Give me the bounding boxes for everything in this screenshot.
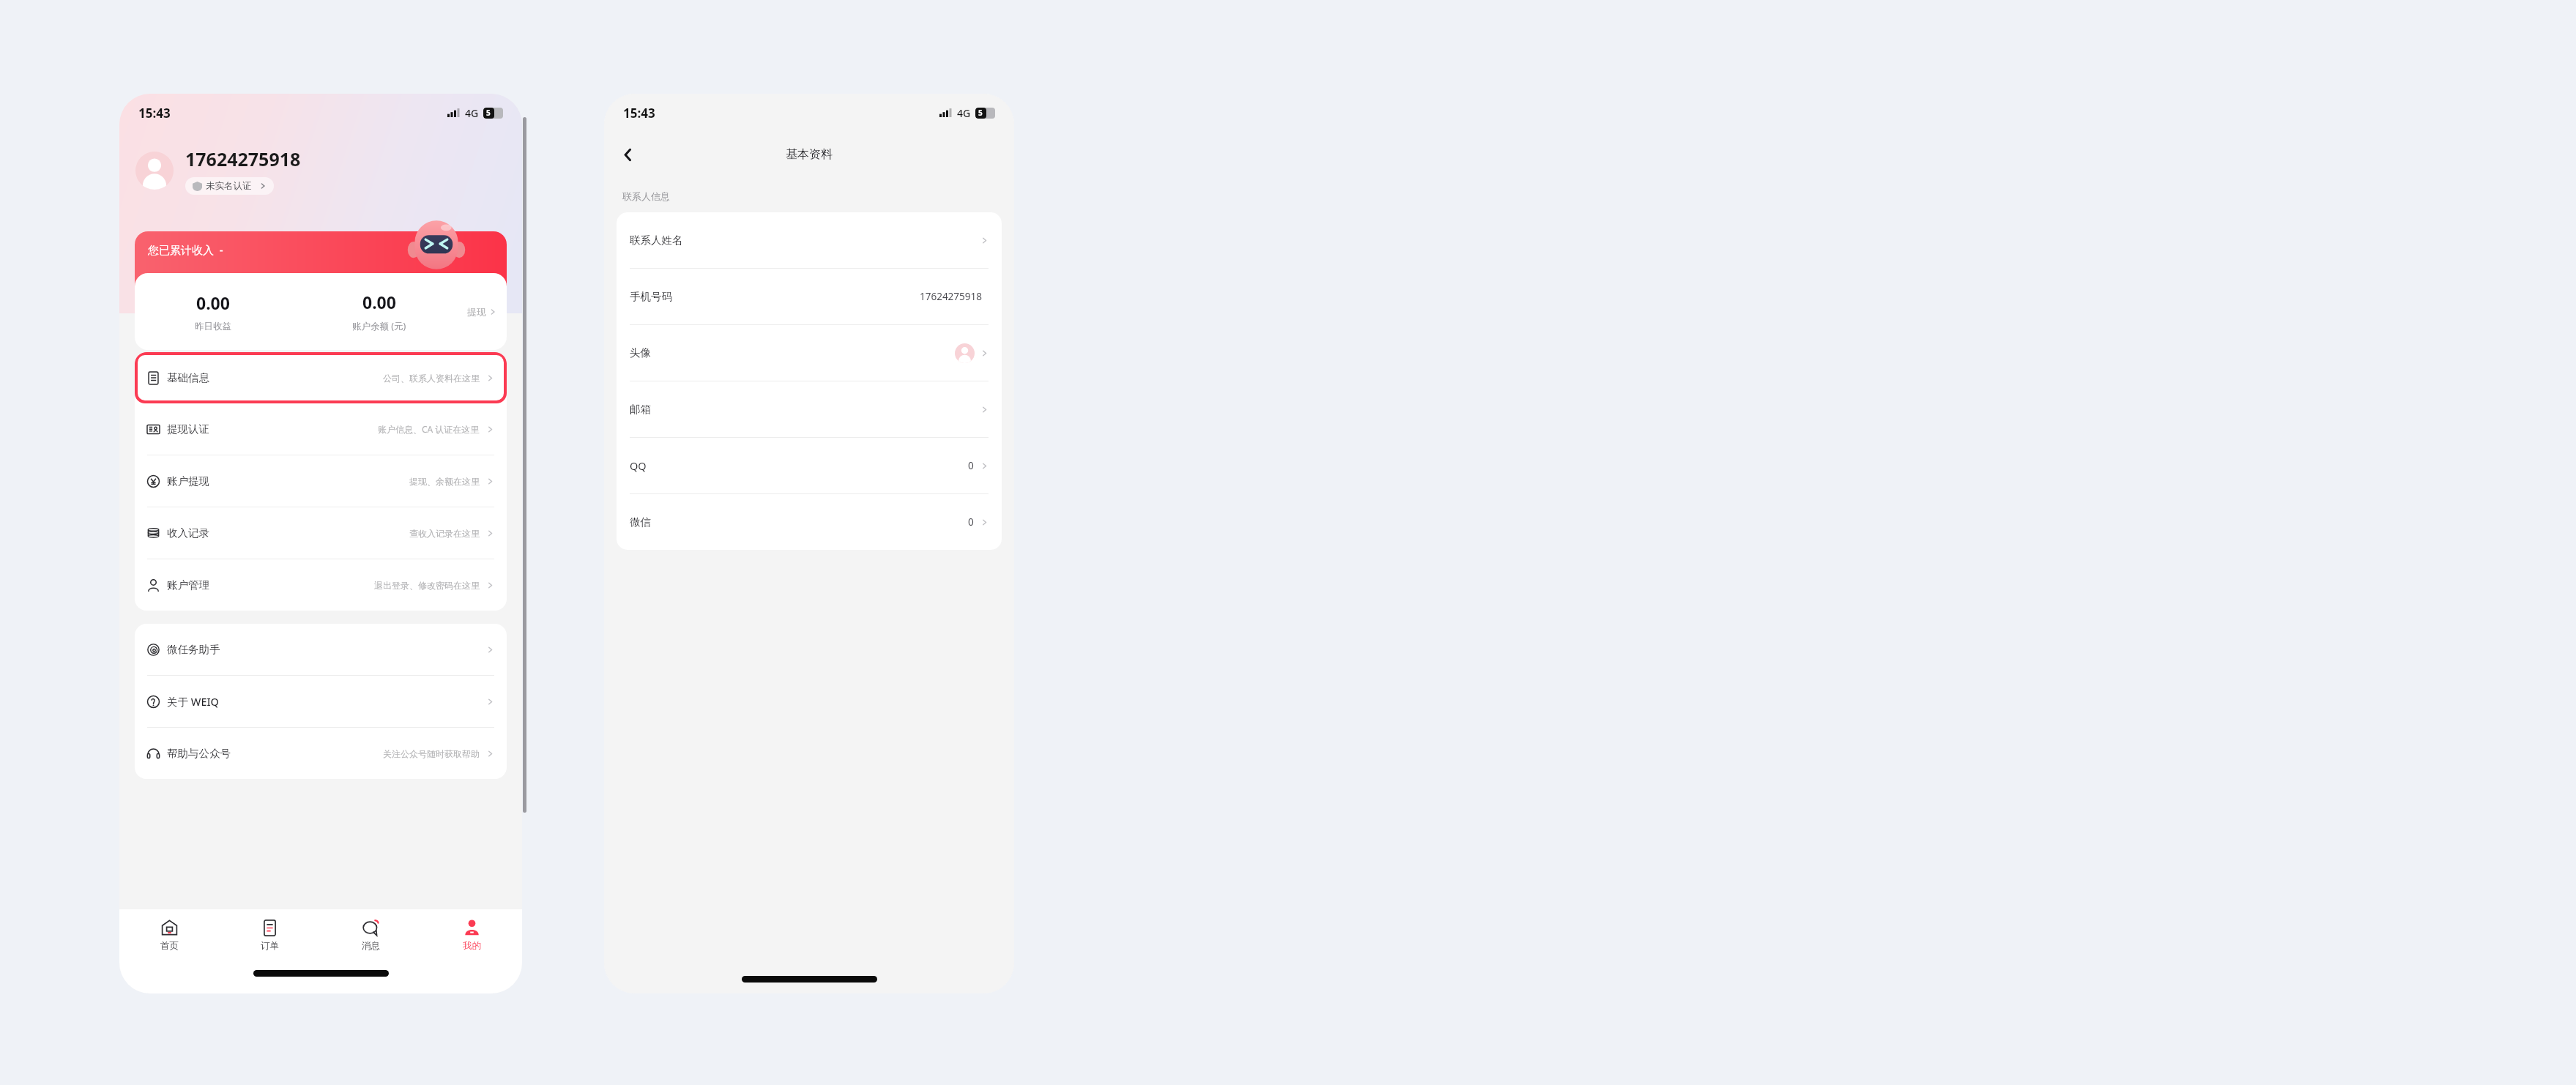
button[interactable]: 帮助与公众号 (135, 728, 507, 779)
staticText: 账户余额 (元) (352, 320, 406, 332)
staticText: 0.00 (196, 291, 230, 314)
staticText: 头像 (630, 346, 651, 359)
button[interactable]: 账户提现 (135, 455, 507, 507)
staticText: 提现、余额在这里 (409, 476, 480, 487)
button[interactable]: 提现 (467, 306, 496, 318)
button[interactable]: 基础信息 (135, 352, 507, 403)
staticText: 首页 (160, 940, 179, 952)
button[interactable]: 关于 WEIQ (135, 676, 507, 728)
button[interactable]: 手机号码 (617, 269, 1002, 325)
staticText: 关注公众号随时获取帮助 (383, 748, 480, 759)
staticText: 昨日收益 (195, 321, 231, 332)
staticText: 订单 (261, 940, 279, 952)
staticText: 账户管理 (167, 578, 209, 592)
staticText: 退出登录、修改密码在这里 (374, 580, 480, 591)
staticText: 账户信息、CA 认证在这里 (378, 423, 480, 435)
button[interactable]: Back (613, 140, 642, 169)
staticText: 微任务助手 (167, 643, 220, 656)
button[interactable]: 头像 (617, 325, 1002, 381)
button[interactable]: 未实名认证 (185, 177, 274, 195)
button[interactable]: 提现认证 (135, 403, 507, 455)
staticText: 基础信息 (167, 371, 209, 384)
staticText: 关于 WEIQ (167, 694, 219, 709)
staticText: 0.00 (362, 291, 396, 313)
staticText: 邮箱 (630, 403, 651, 416)
staticText: 5 (486, 108, 491, 118)
staticText: 4G (957, 106, 971, 120)
staticText: 帮助与公众号 (167, 747, 231, 760)
button[interactable]: 微信 (617, 494, 1002, 550)
staticText: 17624275918 (920, 290, 982, 303)
staticText: 微信 (630, 515, 651, 529)
button[interactable]: 邮箱 (617, 381, 1002, 438)
button[interactable]: 联系人姓名 (617, 212, 1002, 269)
button[interactable]: 您已累计收入 - (135, 231, 507, 316)
staticText: QQ (630, 458, 647, 473)
staticText: 消息 (362, 940, 380, 952)
staticText: 我的 (463, 940, 481, 952)
staticText: 0 (968, 515, 974, 529)
staticText: 联系人姓名 (630, 234, 683, 247)
button[interactable]: 首页 (119, 909, 220, 962)
staticText: 0 (968, 459, 974, 472)
staticText: 账户提现 (167, 474, 209, 488)
staticText: 未实名认证 (206, 180, 252, 192)
staticText: 联系人信息 (622, 190, 670, 202)
staticText: 5 (978, 108, 983, 118)
button[interactable]: 我的 (421, 909, 522, 962)
button[interactable]: 订单 (220, 909, 320, 962)
button[interactable]: 微任务助手 (135, 624, 507, 676)
button[interactable]: 消息 (320, 909, 421, 962)
staticText: 提现 (467, 306, 486, 318)
staticText: 基本资料 (786, 147, 833, 162)
staticText: 您已累计收入 - (148, 242, 223, 257)
button[interactable]: QQ (617, 438, 1002, 494)
staticText: 公司、联系人资料在这里 (383, 373, 480, 384)
staticText: 手机号码 (630, 290, 672, 303)
button[interactable]: 账户管理 (135, 559, 507, 611)
button[interactable]: 收入记录 (135, 507, 507, 559)
staticText: 15:43 (138, 105, 171, 122)
staticText: 17624275918 (185, 146, 301, 171)
staticText: 4G (465, 106, 479, 120)
staticText: 15:43 (623, 105, 655, 122)
staticText: 查收入记录在这里 (409, 528, 480, 539)
staticText: 收入记录 (167, 526, 209, 540)
staticText: 提现认证 (167, 422, 209, 436)
